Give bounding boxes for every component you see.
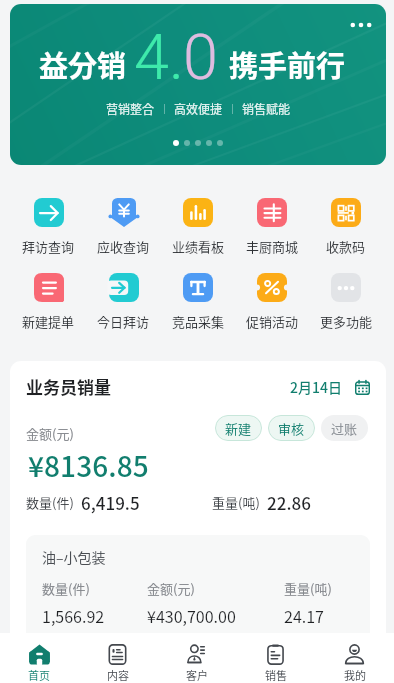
staticText: 高效便捷 — [174, 100, 223, 117]
staticText: 内容 — [107, 667, 129, 683]
button[interactable]: 竞品采集 — [161, 273, 235, 335]
staticText: 更多功能 — [320, 312, 373, 331]
staticText: 应收查询 — [97, 237, 150, 256]
staticText: 销售 — [265, 667, 287, 683]
staticText: 营销整合 — [106, 100, 155, 117]
staticText: 2月14日 — [290, 377, 342, 397]
staticText: 今日拜访 — [97, 312, 150, 331]
staticText: 油–小包装 — [42, 547, 106, 567]
button[interactable]: 应收查询 — [86, 198, 161, 260]
staticText: 竞品采集 — [172, 312, 225, 331]
staticText: 数量(件) — [26, 493, 74, 512]
staticText: 新建提单 — [22, 312, 75, 331]
button[interactable]: 内容 — [78, 633, 157, 683]
staticText: 业务员销量 — [26, 374, 111, 399]
staticText: 0 — [183, 21, 218, 95]
button[interactable]: 新建 — [215, 415, 262, 441]
staticText: ¥430,700.00 — [147, 604, 236, 627]
staticText: 益分销 — [39, 43, 127, 85]
button[interactable]: 过账 — [321, 415, 368, 441]
staticText: 数量(件) — [42, 579, 90, 598]
staticText: 拜访查询 — [22, 237, 75, 256]
button[interactable]: 收款码 — [309, 198, 383, 260]
staticText: 重量(吨) — [284, 579, 332, 598]
button[interactable]: 客户 — [157, 633, 236, 683]
button[interactable]: 促销活动 — [235, 273, 309, 335]
staticText: 客户 — [186, 667, 208, 683]
staticText: 促销活动 — [246, 312, 299, 331]
staticText: 4. — [134, 21, 184, 95]
button[interactable]: 2月14日 — [290, 377, 370, 397]
button[interactable]: More options — [10, 4, 386, 165]
staticText: 6,419.5 — [81, 490, 140, 515]
staticText: 首页 — [28, 667, 50, 683]
staticText: 收款码 — [326, 237, 366, 256]
button[interactable]: 今日拜访 — [86, 273, 161, 335]
button[interactable]: 我的 — [315, 633, 394, 683]
staticText: 丰厨商城 — [246, 237, 299, 256]
button[interactable]: 新建提单 — [11, 273, 86, 335]
staticText: 新建 — [225, 419, 252, 438]
button[interactable]: 审核 — [268, 415, 315, 441]
staticText: 重量(吨) — [212, 493, 260, 512]
staticText: 我的 — [344, 667, 366, 683]
button[interactable]: 丰厨商城 — [235, 198, 309, 260]
staticText: 1,566.92 — [42, 604, 105, 627]
staticText: ¥8136.85 — [28, 445, 149, 486]
staticText: 业绩看板 — [172, 237, 225, 256]
button[interactable]: 销售 — [236, 633, 315, 683]
button[interactable]: 业绩看板 — [161, 198, 235, 260]
button[interactable]: 首页 — [0, 633, 78, 683]
staticText: 审核 — [278, 419, 305, 438]
button[interactable]: 拜访查询 — [11, 198, 86, 260]
staticText: 22.86 — [267, 490, 311, 515]
staticText: 过账 — [331, 419, 358, 438]
staticText: 金额(元) — [26, 424, 74, 443]
staticText: 金额(元) — [147, 579, 195, 598]
staticText: 销售赋能 — [242, 100, 291, 117]
staticText: 携手前行 — [229, 43, 346, 85]
button[interactable]: 更多功能 — [309, 273, 383, 335]
button[interactable]: More options — [344, 8, 378, 42]
staticText: 24.17 — [284, 604, 324, 627]
